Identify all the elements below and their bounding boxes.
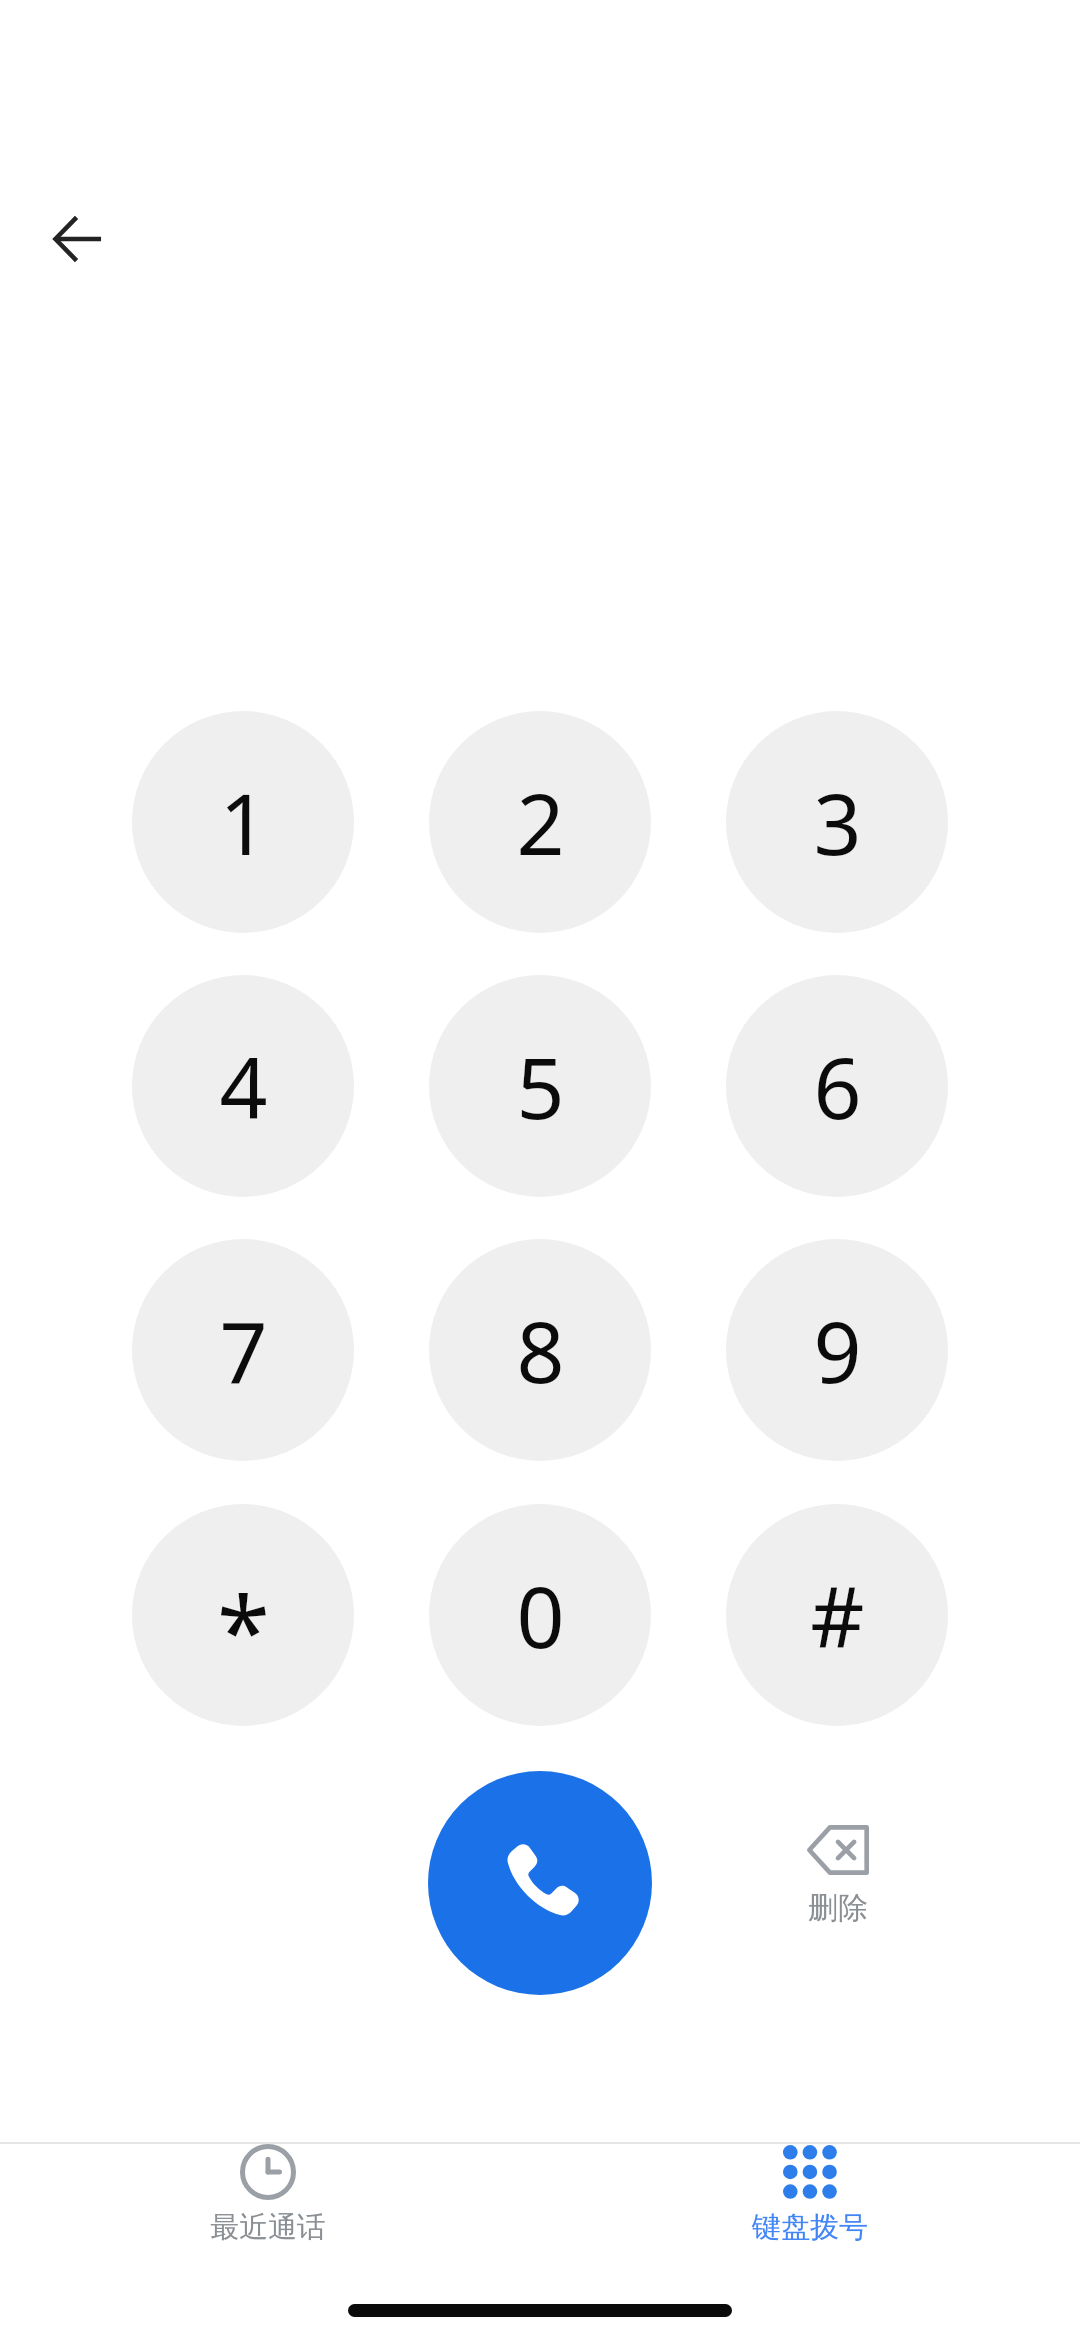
staticText: 4 xyxy=(219,1029,268,1143)
button[interactable]: * xyxy=(132,1504,354,1726)
staticText: # xyxy=(810,1558,865,1672)
staticText: 5 xyxy=(516,1029,565,1143)
button[interactable]: 7 xyxy=(132,1239,354,1461)
staticText: 删除 xyxy=(808,1889,868,1927)
staticText: 8 xyxy=(516,1293,565,1407)
button[interactable]: # xyxy=(726,1504,948,1726)
button[interactable]: 9 xyxy=(726,1239,948,1461)
staticText: * xyxy=(217,1564,270,1695)
staticText: 1 xyxy=(219,765,268,879)
staticText: 键盘拨号 xyxy=(752,2209,868,2246)
staticText: 3 xyxy=(813,765,862,879)
button[interactable]: 4 xyxy=(132,975,354,1197)
button[interactable]: 3 xyxy=(726,711,948,933)
staticText: 2 xyxy=(516,765,565,879)
button[interactable]: 最近通话 xyxy=(88,2144,448,2284)
button[interactable]: 1 xyxy=(132,711,354,933)
button[interactable]: 5 xyxy=(429,975,651,1197)
button[interactable]: Call xyxy=(428,1771,652,1995)
button[interactable]: Back xyxy=(26,187,130,291)
button[interactable]: 2 xyxy=(429,711,651,933)
staticText: 最近通话 xyxy=(210,2209,326,2246)
button[interactable]: 8 xyxy=(429,1239,651,1461)
staticText: 0 xyxy=(516,1558,565,1672)
staticText: 6 xyxy=(813,1029,862,1143)
button[interactable]: 0 xyxy=(429,1504,651,1726)
button[interactable]: 删除 xyxy=(738,1805,938,1955)
button[interactable]: 键盘拨号 xyxy=(630,2144,990,2284)
button[interactable]: 6 xyxy=(726,975,948,1197)
staticText: 9 xyxy=(813,1293,862,1407)
staticText: 7 xyxy=(219,1293,268,1407)
